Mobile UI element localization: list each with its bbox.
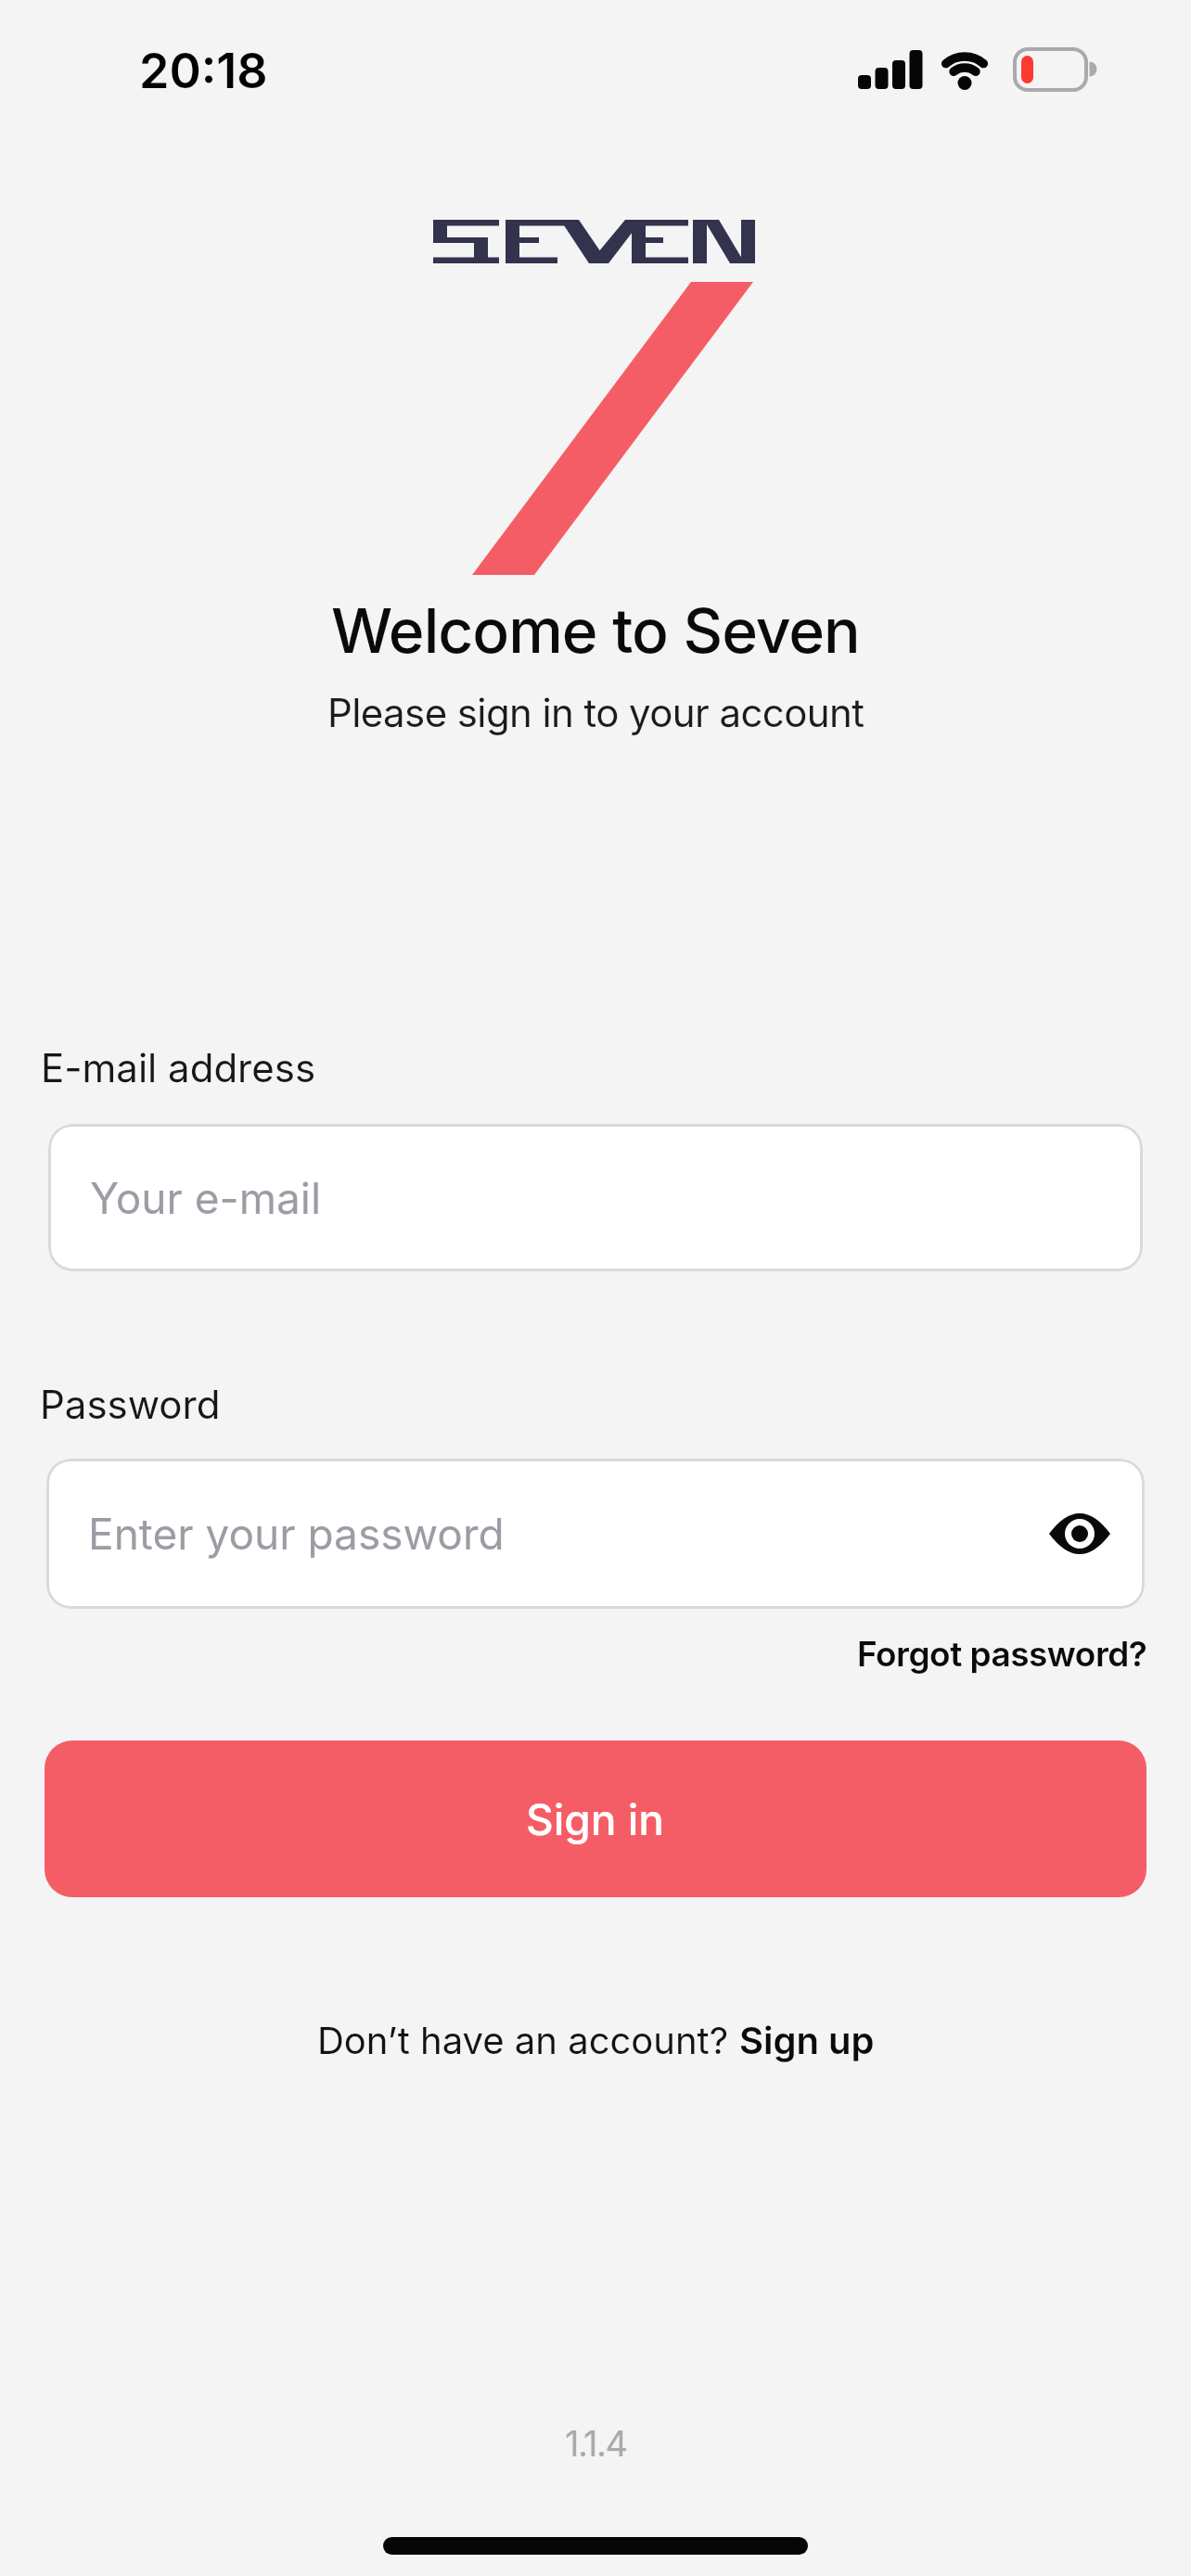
button[interactable]: Sign up: [739, 2018, 875, 2062]
button[interactable]: Enter your password: [46, 1459, 1145, 1609]
staticText: 20:18: [139, 42, 268, 100]
staticText: Enter your password: [88, 1508, 505, 1560]
staticText: Don’t have an account?: [317, 2018, 739, 2062]
button[interactable]: Your e-mail: [48, 1124, 1143, 1271]
staticText: Sign in: [526, 1793, 665, 1845]
staticText: 1.1.4: [565, 2422, 627, 2465]
button[interactable]: [1049, 1508, 1110, 1560]
button[interactable]: Forgot password?: [857, 1633, 1147, 1675]
staticText: E-mail address: [41, 1044, 316, 1091]
staticText: Password: [40, 1381, 221, 1428]
staticText: Please sign in to your account: [327, 689, 864, 736]
button[interactable]: Sign in: [45, 1741, 1146, 1897]
staticText: Welcome to Seven: [331, 593, 860, 668]
staticText: Your e-mail: [90, 1172, 322, 1224]
